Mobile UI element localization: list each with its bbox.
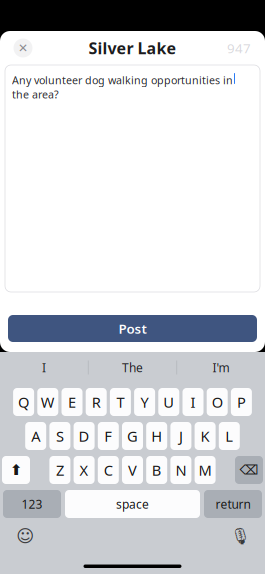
button[interactable]: G: [122, 422, 143, 450]
staticText: M: [199, 460, 212, 480]
button[interactable]: E: [61, 388, 82, 416]
staticText: H: [151, 426, 162, 446]
staticText: Z: [56, 460, 64, 480]
button[interactable]: Emoji: [10, 524, 40, 548]
staticText: 123: [21, 496, 42, 512]
staticText: V: [128, 460, 137, 480]
staticText: F: [104, 426, 112, 446]
staticText: C: [104, 460, 113, 480]
staticText: U: [163, 392, 174, 412]
button[interactable]: Y: [134, 388, 155, 416]
staticText: J: [179, 426, 183, 446]
staticText: Any volunteer dog walking opportunities …: [12, 73, 233, 101]
staticText: O: [212, 392, 223, 412]
button[interactable]: D: [74, 422, 95, 450]
staticText: A: [31, 426, 40, 446]
staticText: space: [116, 496, 149, 512]
button[interactable]: F: [98, 422, 119, 450]
button[interactable]: I: [0, 352, 88, 383]
button[interactable]: S: [49, 422, 70, 450]
button[interactable]: M: [195, 456, 216, 484]
button[interactable]: K: [195, 422, 216, 450]
button[interactable]: space: [65, 490, 200, 518]
staticText: 🎙: [230, 527, 250, 545]
button[interactable]: The: [89, 352, 176, 383]
button[interactable]: Characters remaining: [219, 31, 259, 65]
button[interactable]: Dictate: [225, 524, 255, 548]
staticText: I: [190, 392, 195, 412]
button[interactable]: A: [25, 422, 46, 450]
button[interactable]: H: [146, 422, 167, 450]
button[interactable]: Delete: [235, 456, 263, 484]
staticText: I'm: [213, 359, 230, 375]
button[interactable]: P: [231, 388, 252, 416]
button[interactable]: Close: [6, 31, 40, 65]
staticText: I: [42, 359, 46, 375]
staticText: P: [237, 392, 246, 412]
button[interactable]: T: [110, 388, 131, 416]
button[interactable]: 123: [3, 490, 61, 518]
button[interactable]: R: [86, 388, 107, 416]
button[interactable]: Z: [49, 456, 70, 484]
button[interactable]: W: [37, 388, 58, 416]
staticText: K: [201, 426, 210, 446]
button[interactable]: Shift: [2, 456, 30, 484]
button[interactable]: O: [207, 388, 228, 416]
staticText: S: [56, 426, 64, 446]
staticText: X: [80, 460, 89, 480]
button[interactable]: V: [122, 456, 143, 484]
staticText: G: [127, 426, 138, 446]
staticText: N: [175, 460, 186, 480]
staticText: D: [79, 426, 90, 446]
button[interactable]: U: [158, 388, 179, 416]
button[interactable]: J: [170, 422, 191, 450]
button[interactable]: Post: [8, 315, 257, 342]
button[interactable]: I'm: [177, 352, 265, 383]
staticText: Y: [141, 392, 149, 412]
staticText: ☺: [16, 526, 34, 546]
button[interactable]: I: [182, 388, 203, 416]
staticText: E: [68, 392, 76, 412]
staticText: B: [152, 460, 162, 480]
button[interactable]: C: [98, 456, 119, 484]
button[interactable]: return: [204, 490, 262, 518]
button[interactable]: X: [74, 456, 95, 484]
button[interactable]: B: [146, 456, 167, 484]
button[interactable]: Any volunteer dog walking opportunities …: [5, 65, 260, 292]
staticText: L: [225, 426, 233, 446]
staticText: Silver Lake: [88, 37, 176, 59]
staticText: The: [122, 359, 143, 375]
button[interactable]: Q: [13, 388, 34, 416]
button[interactable]: N: [170, 456, 191, 484]
staticText: W: [41, 392, 55, 412]
staticText: Post: [118, 320, 146, 337]
staticText: ⌫: [239, 462, 258, 477]
staticText: 947: [227, 39, 251, 57]
staticText: T: [116, 392, 124, 412]
staticText: return: [215, 496, 250, 512]
staticText: ⬆: [10, 462, 22, 478]
staticText: R: [92, 392, 101, 412]
button[interactable]: L: [219, 422, 240, 450]
staticText: ✕: [18, 41, 28, 55]
staticText: Q: [18, 392, 29, 412]
